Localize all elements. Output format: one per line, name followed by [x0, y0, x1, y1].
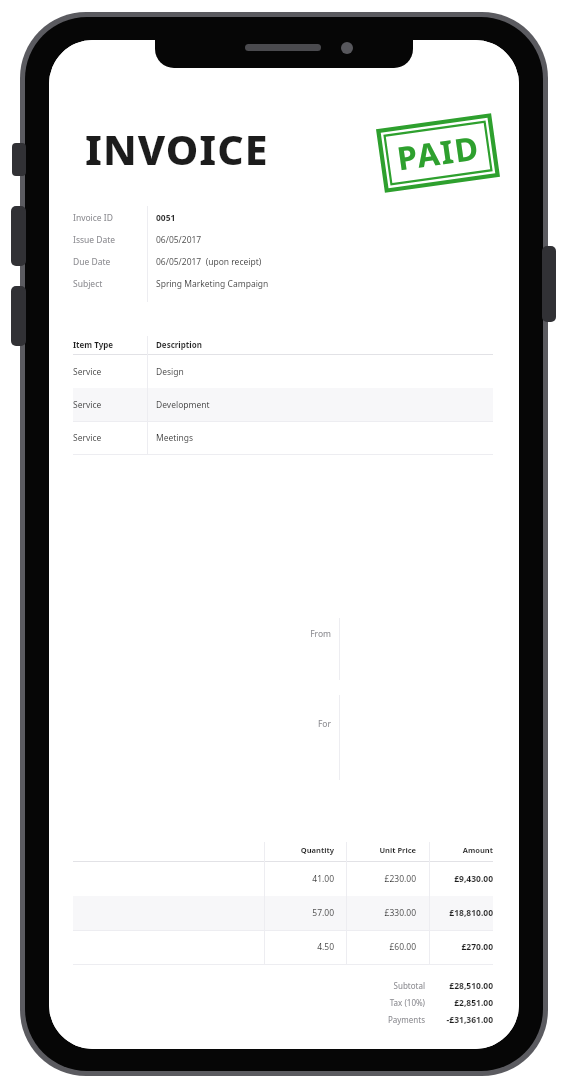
button[interactable]: 41.00 — [73, 862, 493, 896]
button[interactable]: Power — [542, 246, 556, 322]
staticText: -£31,361.00 — [423, 1014, 493, 1026]
staticText: 57.00 — [264, 907, 334, 919]
staticText: 06/05/2017 (upon receipt) — [156, 256, 262, 268]
button[interactable]: Service — [73, 355, 493, 388]
button[interactable]: Silent switch — [12, 143, 26, 176]
button[interactable]: Paid stamp — [378, 115, 498, 190]
button[interactable]: 57.00 — [73, 896, 493, 930]
staticText: Unit Price — [346, 845, 416, 855]
staticText: £9,430.00 — [423, 873, 493, 885]
staticText: £2,851.00 — [423, 997, 493, 1009]
staticText: Service — [73, 432, 156, 444]
button[interactable]: Volume up — [11, 206, 26, 266]
button[interactable]: Service — [73, 421, 493, 454]
staticText: 41.00 — [264, 873, 334, 885]
staticText: Description — [156, 339, 202, 350]
staticText: Spring Marketing Campaign — [156, 278, 269, 290]
staticText: For — [279, 718, 331, 730]
staticText: Tax (10%) — [339, 997, 425, 1008]
staticText: £330.00 — [346, 907, 416, 919]
staticText: PAID — [394, 125, 483, 180]
staticText: 06/05/2017 — [156, 234, 202, 246]
staticText: Development — [156, 399, 210, 411]
staticText: Invoice ID — [73, 212, 113, 224]
staticText: From — [279, 628, 331, 640]
staticText: Due Date — [73, 256, 111, 268]
staticText: Amount — [423, 845, 493, 855]
staticText: £28,510.00 — [423, 980, 493, 992]
staticText: Service — [73, 399, 156, 411]
staticText: Issue Date — [73, 234, 116, 246]
staticText: 4.50 — [264, 941, 334, 953]
staticText: £270.00 — [423, 941, 493, 953]
staticText: £0.00 — [419, 1046, 493, 1049]
staticText: 0051 — [156, 212, 176, 224]
staticText: £60.00 — [346, 941, 416, 953]
staticText: Design — [156, 366, 184, 378]
staticText: Payments — [339, 1014, 425, 1025]
button[interactable]: Volume down — [11, 286, 26, 346]
staticText: Subject — [73, 278, 103, 290]
staticText: Service — [73, 366, 156, 378]
button[interactable]: Service — [73, 388, 493, 421]
staticText: Quantity — [264, 845, 334, 855]
staticText: £230.00 — [346, 873, 416, 885]
staticText: Meetings — [156, 432, 194, 444]
staticText: £18,810.00 — [423, 907, 493, 919]
button[interactable]: 4.50 — [73, 930, 493, 964]
staticText: Subtotal — [339, 980, 425, 991]
staticText: Item Type — [73, 339, 114, 350]
staticText: INVOICE — [85, 121, 269, 177]
